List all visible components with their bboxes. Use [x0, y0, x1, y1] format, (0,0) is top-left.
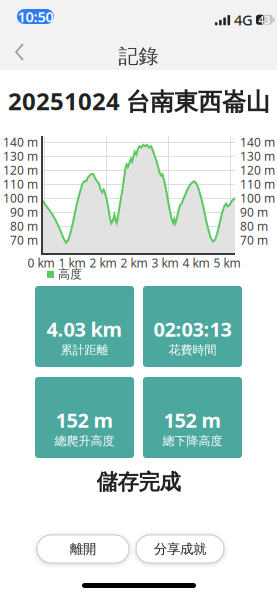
staticText: 140 m [3, 134, 38, 150]
staticText: 2 km [120, 255, 147, 271]
staticText: 累計距離 [60, 343, 108, 357]
staticText: 152 m [55, 407, 113, 433]
staticText: 4 km [182, 255, 209, 271]
staticText: 總下降高度 [162, 434, 222, 448]
staticText: 110 m [3, 176, 38, 192]
staticText: 高度 [58, 267, 82, 282]
staticText: 110 m [240, 176, 275, 192]
staticText: 花費時間 [168, 343, 216, 357]
staticText: 02:03:13 [153, 316, 231, 342]
button[interactable]: 離開 [37, 535, 129, 563]
staticText: 總爬升高度 [54, 434, 114, 448]
staticText: 130 m [240, 148, 275, 164]
staticText: 3 km [151, 255, 178, 271]
staticText: 70 m [240, 232, 268, 248]
staticText: 80 m [10, 218, 38, 234]
staticText: 130 m [3, 148, 38, 164]
staticText: 100 m [240, 190, 275, 206]
staticText: 140 m [240, 134, 275, 150]
button[interactable]: Back [6, 40, 42, 70]
staticText: 儲存完成 [96, 469, 180, 495]
staticText: 80 m [240, 218, 268, 234]
button[interactable]: 分享成就 [136, 535, 224, 563]
staticText: 20251024 台南東西崙山 [8, 85, 270, 117]
staticText: 90 m [240, 204, 268, 220]
staticText: 70 m [10, 232, 38, 248]
staticText: 5 km [213, 255, 240, 271]
staticText: 100 m [3, 190, 38, 206]
staticText: 1 km [58, 255, 85, 271]
staticText: 120 m [240, 162, 275, 178]
staticText: 4.03 km [46, 316, 122, 342]
staticText: 120 m [3, 162, 38, 178]
staticText: 43 [258, 13, 270, 27]
staticText: 分享成就 [154, 541, 206, 557]
staticText: 90 m [10, 204, 38, 220]
staticText: 4G [234, 10, 253, 29]
staticText: 0 km [27, 255, 54, 271]
staticText: 10:50 [17, 7, 53, 26]
staticText: 記錄 [118, 44, 158, 69]
staticText: 152 m [163, 407, 221, 433]
staticText: 2 km [89, 255, 116, 271]
staticText: 離開 [70, 541, 96, 557]
